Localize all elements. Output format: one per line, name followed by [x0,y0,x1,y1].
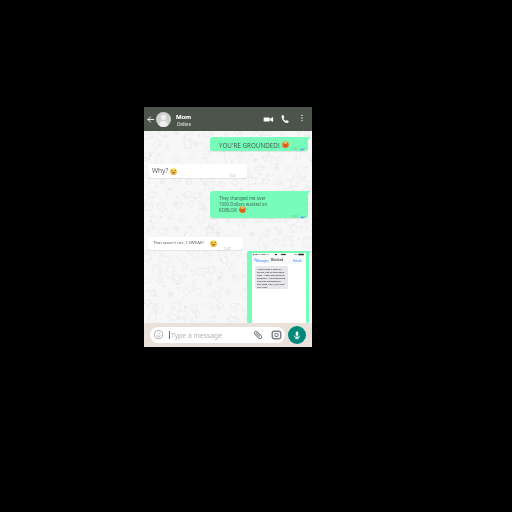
staticText: "There was a load of [257,267,282,270]
button[interactable]: Camera [271,329,282,340]
button[interactable]: Video call [261,112,275,126]
button[interactable] [150,327,285,343]
button[interactable]: More options [296,112,308,124]
staticText: Mom [176,112,192,120]
staticText: can't be handled for [257,279,281,282]
staticText: That wasn't me, I SWEAR! [153,239,204,245]
button[interactable]: Call [278,112,292,126]
staticText: 11:27 [224,247,231,251]
button[interactable] [210,191,308,218]
staticText: Online [177,121,191,127]
button[interactable]: Back [144,113,156,125]
staticText: 11:27 [229,174,236,178]
staticText: YOU'RE GROUNDED! [219,141,280,150]
staticText: 1000 Dollars wasted on [219,201,268,207]
staticText: 11:27 [291,215,298,219]
staticText: Details [293,259,302,263]
button[interactable] [149,164,247,178]
staticText: Type a message [171,331,222,340]
staticText: They changed me over [219,195,266,201]
staticText: said, "1000 was used at [257,273,285,276]
staticText: Why? [152,166,169,175]
button[interactable]: Messages [247,251,309,323]
staticText: any help, call 1-877-800 [257,282,285,285]
button[interactable]: Attach [252,329,264,341]
staticText: 401-7284 [257,285,268,288]
button[interactable] [148,237,243,250]
staticText: Messages [256,259,269,263]
button[interactable] [210,137,308,151]
staticText: 11:27 [291,147,298,151]
button[interactable]: Voice message [288,326,306,344]
staticText: ROBLOX! [219,207,238,213]
staticText: errors, idk of the email [257,270,285,273]
staticText: Blocked [271,258,284,262]
staticText: ROBLOX". You purchase [257,276,286,279]
